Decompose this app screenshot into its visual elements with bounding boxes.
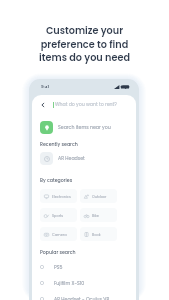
button[interactable]: Bike [80, 208, 117, 222]
staticText: Recently search [40, 141, 78, 148]
button[interactable]: AR Headset - Oculus VR [40, 296, 128, 300]
staticText: Popular search [40, 249, 76, 256]
button[interactable]: AR Headset [40, 152, 128, 165]
button[interactable]: Search items near you [40, 121, 128, 134]
staticText: Fujifilm X-S10 [54, 280, 85, 286]
staticText: AR Headset - Oculus VR [54, 296, 110, 300]
staticText: What do you want to rent? [55, 101, 117, 108]
staticText: Outdoor [92, 194, 107, 199]
button[interactable]: Electronics [40, 189, 77, 203]
staticText: 9:41 [41, 84, 50, 90]
button[interactable]: Outdoor [80, 189, 117, 203]
staticText: Camera [52, 232, 67, 237]
staticText: By categories [40, 177, 73, 184]
staticText: Bike [92, 213, 99, 218]
staticText: Electronics [52, 194, 71, 199]
button[interactable]: Fujifilm X-S10 [40, 280, 128, 286]
staticText: Search items near you [58, 124, 111, 131]
staticText: Sports [52, 213, 64, 218]
button[interactable]: PS5 [40, 264, 128, 270]
button[interactable]: Back [39, 101, 47, 109]
staticText: PS5 [54, 264, 63, 270]
button[interactable]: Sports [40, 208, 77, 222]
staticText: Customize your preference to find items … [39, 24, 130, 64]
staticText: Book [92, 232, 101, 237]
button[interactable]: Camera [40, 227, 77, 241]
staticText: AR Headset [58, 155, 85, 162]
button[interactable]: Book [80, 227, 117, 241]
